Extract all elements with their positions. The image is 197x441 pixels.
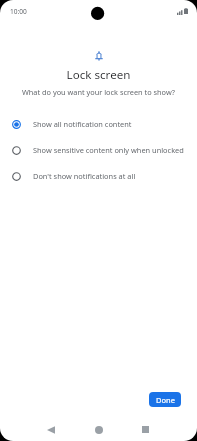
button[interactable]: Done — [149, 392, 181, 407]
staticText: Don't show notifications at all — [33, 171, 136, 181]
staticText: Done — [156, 395, 175, 405]
button[interactable]: Home — [88, 419, 109, 440]
staticText: Lock screen — [0, 67, 197, 83]
button[interactable]: Show sensitive content only when unlocke… — [0, 137, 197, 163]
staticText: 10:00 — [10, 7, 27, 16]
staticText: What do you want your lock screen to sho… — [0, 87, 197, 97]
button[interactable]: Recent apps — [135, 419, 156, 440]
staticText: Show sensitive content only when unlocke… — [33, 145, 184, 155]
button[interactable]: Show all notification content — [0, 111, 197, 137]
button[interactable]: Don't show notifications at all — [0, 163, 197, 189]
button[interactable]: Back — [40, 419, 61, 440]
staticText: Show all notification content — [33, 119, 132, 129]
